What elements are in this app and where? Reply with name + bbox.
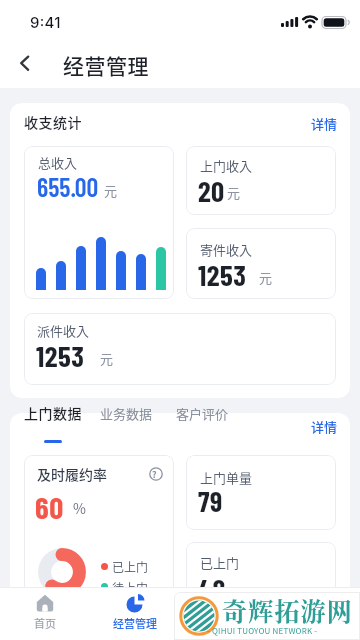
staticText: 元	[100, 349, 114, 368]
staticText: ?	[152, 468, 157, 481]
staticText: 经营管理	[113, 615, 157, 631]
staticText: 1253	[198, 257, 247, 292]
staticText: 及时履约率	[37, 464, 107, 484]
staticText: 655.00	[37, 171, 99, 202]
staticText: 48	[198, 571, 226, 606]
staticText: 上门数据	[24, 403, 82, 423]
staticText: 20	[198, 173, 225, 208]
staticText: 详情	[311, 114, 338, 133]
staticText: 派件收入	[37, 321, 90, 340]
staticText: 经营管理	[63, 50, 149, 80]
staticText: 详情	[311, 417, 338, 436]
staticText: 60	[35, 488, 64, 525]
staticText: 收支统计	[24, 112, 82, 132]
staticText: 客户评价	[176, 404, 229, 423]
staticText: 1253	[36, 338, 85, 373]
staticText: 元	[227, 183, 241, 202]
staticText: %	[73, 498, 86, 518]
staticText: 9:41	[30, 13, 61, 31]
staticText: 上门收入	[200, 156, 253, 175]
staticText: 待上门	[112, 579, 149, 596]
staticText: 元	[259, 268, 273, 287]
staticText: 首页	[34, 615, 56, 631]
button[interactable]: 上门数据	[24, 414, 84, 438]
staticText: 已上门	[200, 553, 240, 572]
staticText: 已上门	[112, 558, 149, 575]
staticText: 寄件收入	[200, 240, 253, 259]
button[interactable]: 经营管理	[105, 588, 165, 640]
staticText: - QIHUI TUOYOU NETWORK -	[207, 625, 318, 637]
staticText: 79	[198, 484, 223, 518]
staticText: 元	[104, 181, 118, 200]
button[interactable]: 首页	[15, 588, 75, 640]
staticText: 总收入	[38, 153, 78, 172]
button[interactable]: 详情	[306, 110, 342, 136]
button[interactable]: 客户评价	[176, 414, 230, 438]
staticText: 业务数据	[100, 404, 153, 423]
button[interactable]: 详情	[306, 413, 342, 439]
button[interactable]	[12, 51, 38, 77]
button[interactable]: 业务数据	[100, 414, 154, 438]
staticText: 奇辉拓游网	[222, 592, 354, 628]
staticText: 上门单量	[200, 468, 253, 487]
